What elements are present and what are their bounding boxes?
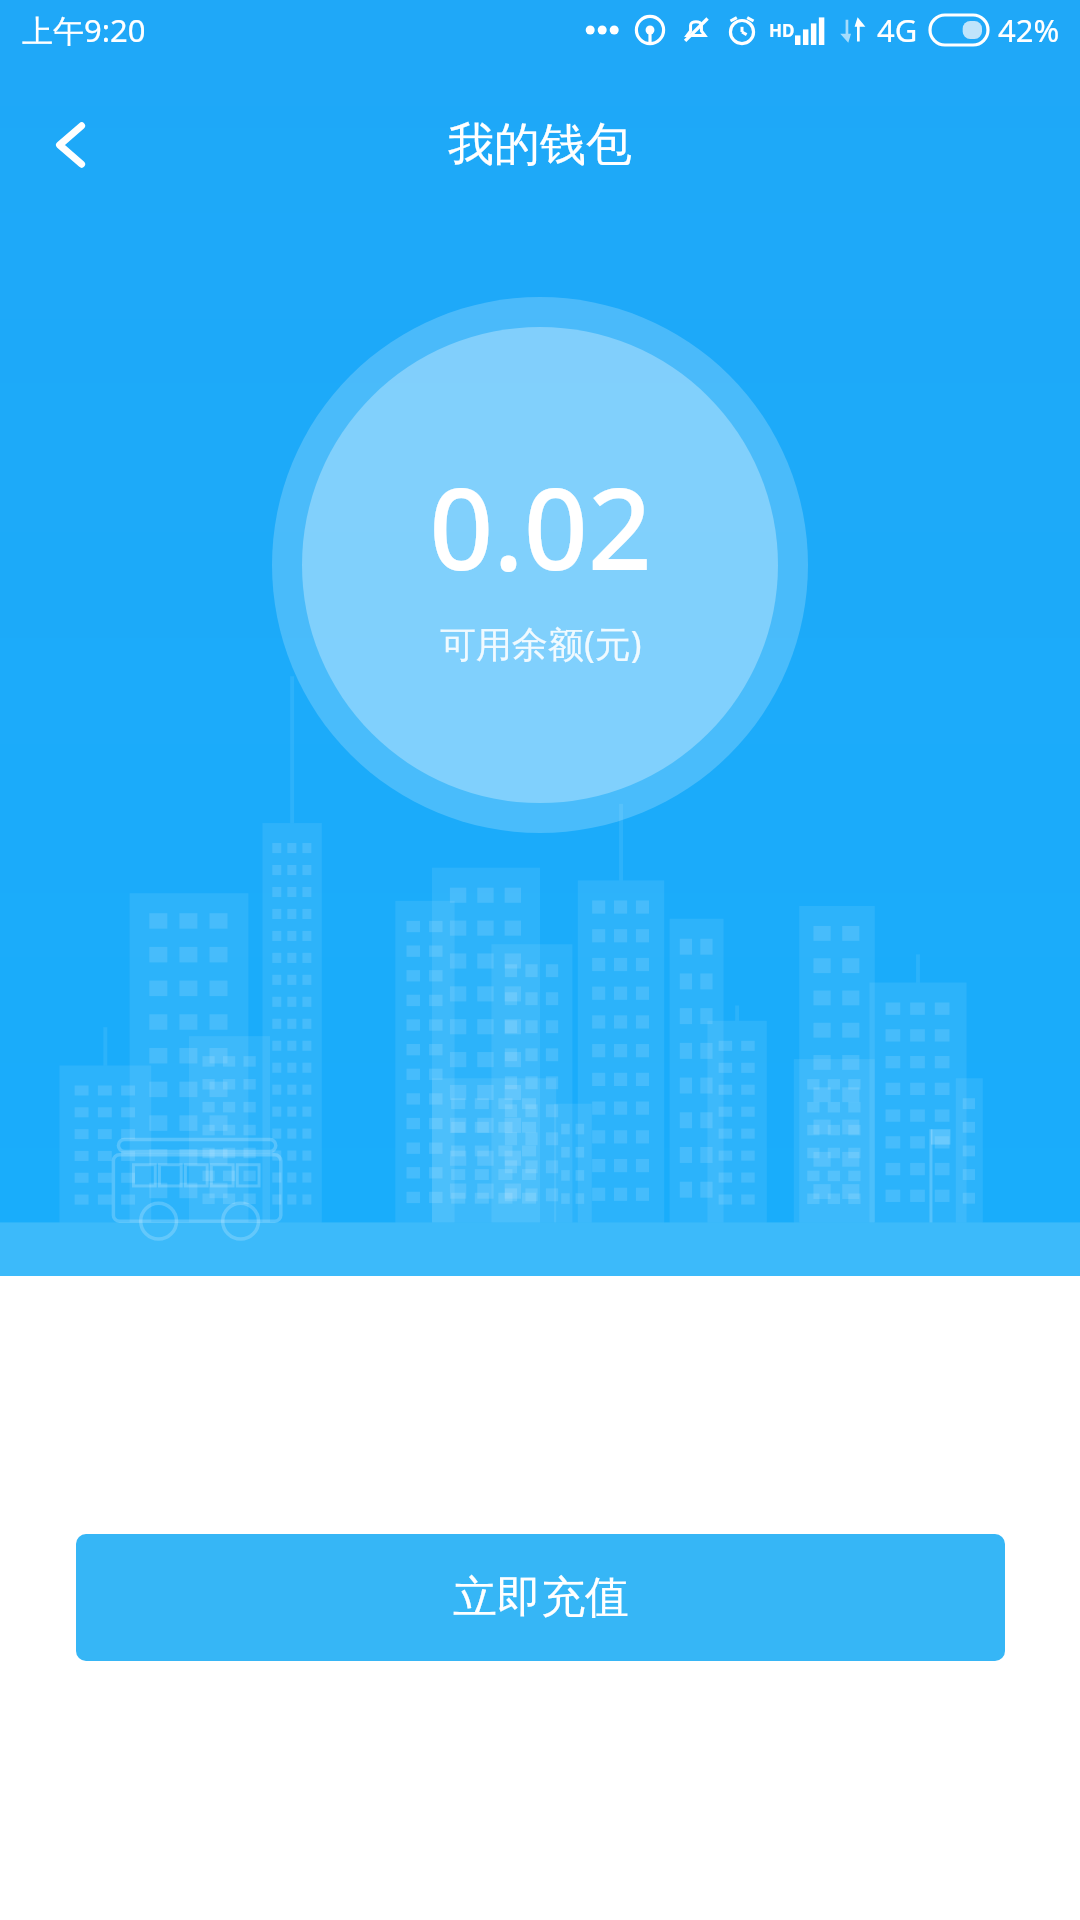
button[interactable]: Back	[24, 97, 120, 193]
button[interactable]: 立即充值	[76, 1534, 1005, 1661]
staticText: 立即充值	[453, 1570, 629, 1625]
staticText: HD	[769, 19, 795, 42]
staticText: 42%	[998, 9, 1060, 51]
staticText: 我的钱包	[448, 116, 632, 174]
staticText: 0.02	[429, 450, 652, 603]
staticText: 上午9:20	[22, 9, 146, 51]
staticText: 4G	[877, 9, 918, 51]
staticText: 可用余额(元)	[440, 619, 642, 668]
